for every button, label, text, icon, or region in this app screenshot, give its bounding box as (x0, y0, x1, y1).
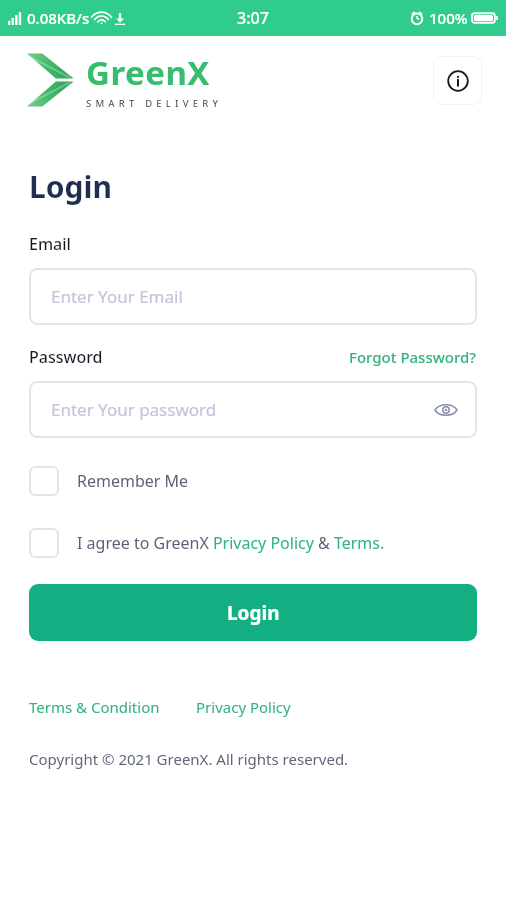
staticText: Remember Me (77, 470, 189, 492)
button[interactable]: Remember Me (29, 466, 189, 496)
staticText: Enter Your password (51, 398, 217, 421)
button[interactable]: Terms & Condition (29, 697, 160, 717)
staticText: I agree to GreenX Privacy Policy & Terms… (77, 532, 385, 554)
staticText: Password (29, 346, 103, 368)
staticText: 0.08KB/s (27, 8, 90, 28)
button[interactable]: Forgot Password? (349, 347, 477, 367)
button[interactable]: Login (29, 584, 477, 641)
staticText: Email (29, 233, 71, 255)
button[interactable]: Information (433, 56, 482, 105)
staticText: SMART DELIVERY (86, 97, 223, 110)
staticText: Privacy Policy (196, 697, 291, 717)
button[interactable]: Enter Your password (29, 381, 477, 438)
staticText: 100% (429, 8, 468, 28)
staticText: 3:07 (237, 7, 269, 29)
staticText: Forgot Password? (349, 347, 477, 367)
staticText: Terms & Condition (29, 697, 160, 717)
button[interactable]: Privacy Policy (196, 697, 291, 717)
staticText: GreenX (86, 50, 210, 95)
button[interactable]: Show password (431, 395, 461, 425)
staticText: Copyright © 2021 GreenX. All rights rese… (29, 749, 349, 769)
staticText: Enter Your Email (51, 285, 183, 308)
staticText: Login (227, 600, 280, 626)
staticText: Login (29, 166, 112, 207)
button[interactable]: Enter Your Email (29, 268, 477, 325)
button[interactable]: I agree to GreenX Privacy Policy & Terms… (29, 528, 385, 558)
